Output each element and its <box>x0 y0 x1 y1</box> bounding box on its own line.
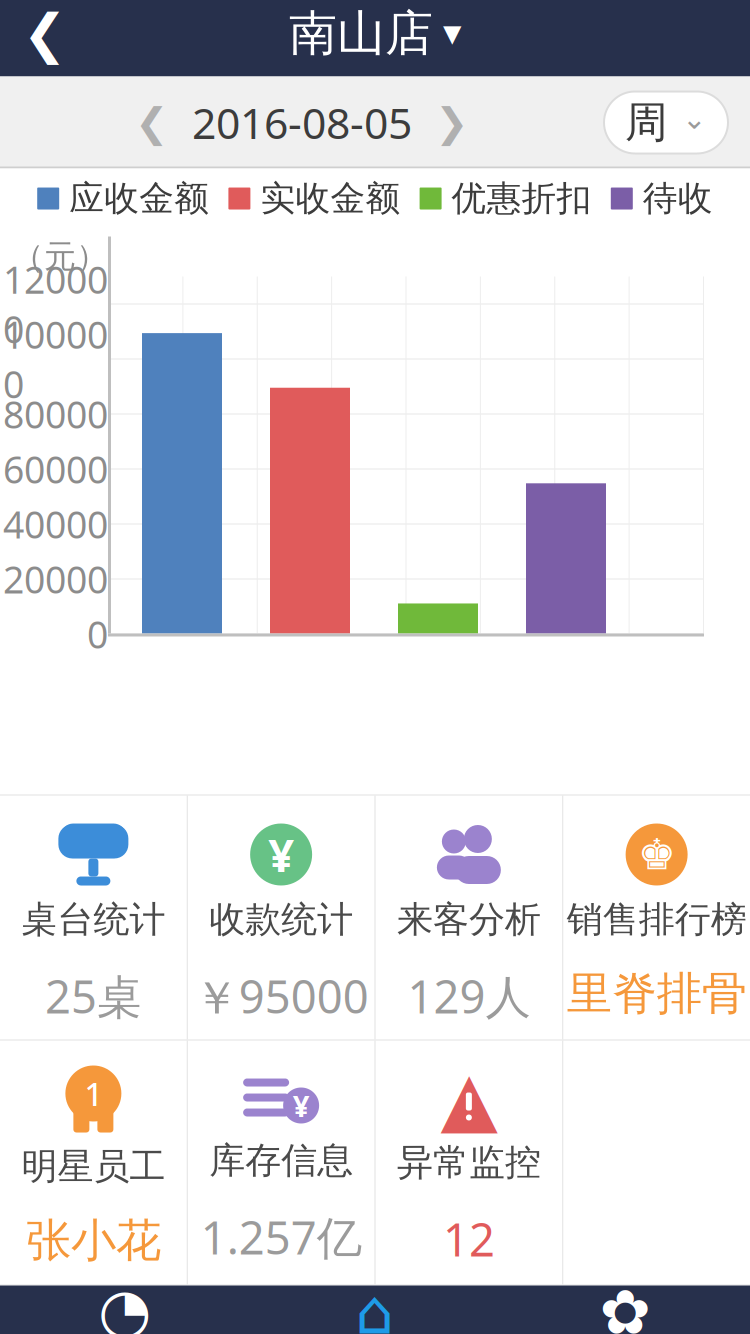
staticText: 南山店 <box>289 4 433 63</box>
button[interactable]: ¥ <box>188 795 375 1039</box>
staticText: 异常监控 <box>397 1140 541 1185</box>
button[interactable]: 周 <box>604 91 728 153</box>
button[interactable]: 上一周 <box>124 89 180 155</box>
staticText: 60000 <box>3 444 108 494</box>
staticText: 优惠折扣 <box>452 177 592 220</box>
staticText: 20000 <box>3 554 108 604</box>
staticText: ▲ <box>440 1056 497 1141</box>
staticText: ￥95000 <box>194 966 369 1026</box>
staticText: 应收金额 <box>69 177 209 220</box>
button[interactable]: 下一周 <box>424 89 480 155</box>
staticText: 周 <box>625 96 668 149</box>
button[interactable]: ◔ <box>0 1285 250 1334</box>
staticText: 129人 <box>407 966 530 1026</box>
staticText: 40000 <box>3 499 108 549</box>
button[interactable]: 来客分析 <box>375 795 562 1039</box>
staticText: 2016-08-05 <box>192 94 412 151</box>
button[interactable]: ⌂ <box>250 1285 500 1334</box>
staticText: 桌台统计 <box>21 897 165 942</box>
staticText: 销售排行榜 <box>567 897 747 942</box>
button[interactable]: 返回 <box>0 0 90 76</box>
staticText: 80000 <box>3 389 108 439</box>
staticText: 来客分析 <box>397 897 541 942</box>
staticText: ⌄ <box>682 102 707 135</box>
staticText: ❮ <box>22 3 67 64</box>
staticText: ▼ <box>443 20 461 47</box>
staticText: 0 <box>87 609 108 659</box>
staticText: ♚ <box>638 830 676 879</box>
staticText: 待收 <box>643 177 713 220</box>
button[interactable]: 南山店 <box>271 0 479 76</box>
staticText: ✿ <box>599 1278 650 1334</box>
button[interactable]: ¥ <box>188 1040 375 1284</box>
staticText: 1 <box>84 1072 102 1115</box>
button[interactable]: ✿ <box>500 1285 750 1334</box>
staticText: 12 <box>443 1209 495 1269</box>
staticText: 收款统计 <box>209 897 353 942</box>
staticText: 实收金额 <box>260 177 400 220</box>
staticText: ¥ <box>268 824 294 885</box>
staticText: 库存信息 <box>209 1138 353 1183</box>
staticText: ◔ <box>98 1276 152 1334</box>
staticText: 明星员工 <box>21 1144 165 1189</box>
staticText: 25桌 <box>45 966 142 1026</box>
staticText: 张小花 <box>26 1213 161 1268</box>
button[interactable]: ▲ <box>375 1040 562 1284</box>
staticText: 1.257亿 <box>201 1207 362 1267</box>
button[interactable]: ♚ <box>563 795 750 1039</box>
staticText: ¥ <box>293 1086 310 1125</box>
staticText: ❮ <box>135 100 169 145</box>
staticText: （元） <box>12 237 108 276</box>
button[interactable]: 桌台统计 <box>0 795 187 1039</box>
staticText: 120000 <box>3 254 108 354</box>
staticText: ❯ <box>435 100 469 145</box>
staticText: ⌂ <box>355 1278 394 1334</box>
staticText: 里脊排骨 <box>567 966 747 1021</box>
button[interactable]: 1 <box>0 1040 187 1284</box>
staticText: 100000 <box>3 309 108 409</box>
